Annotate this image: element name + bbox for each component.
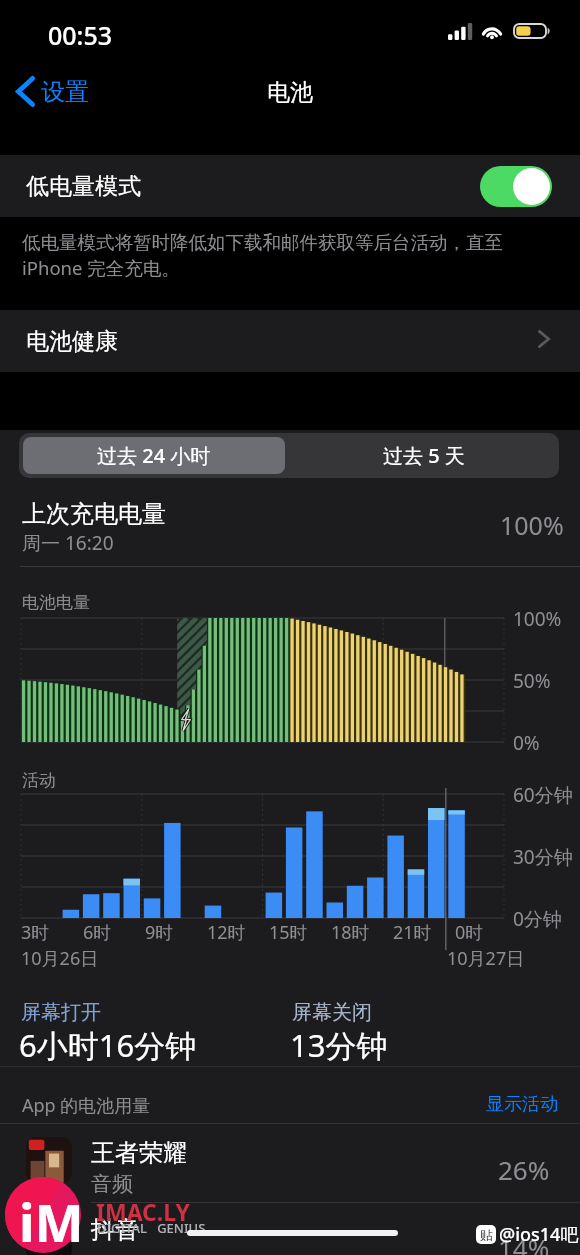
staticText: 00:53 [48,18,113,52]
staticText: 上次充电电量 [22,499,166,529]
staticText: 15时 [269,920,308,945]
staticText: 屏幕打开 [21,1000,101,1025]
button[interactable]: Low Power Mode toggle [480,166,552,207]
staticText: 6时 [83,920,112,945]
staticText: 50% [513,668,551,694]
staticText: 电池健康 [26,327,118,356]
button[interactable]: 过去 5 天 [289,433,559,478]
staticText: iM [19,1186,84,1255]
staticText: 电池电量 [22,592,90,613]
button[interactable]: 过去 24 小时 [23,437,285,474]
staticText: 音频 [91,1171,133,1197]
staticText: 10月27日 [447,946,525,971]
staticText: 贴 [480,1227,493,1243]
button[interactable]: 电池健康 [0,310,580,372]
staticText: 26% [498,1152,550,1187]
staticText: IMAC.LY [96,1196,190,1227]
staticText: 12时 [207,920,246,945]
staticText: 9时 [145,920,174,945]
staticText: 13分钟 [290,1024,388,1066]
staticText: 0分钟 [513,906,562,932]
button[interactable]: 设置 [16,76,89,107]
staticText: 6小时16分钟 [19,1024,197,1066]
staticText: 100% [513,606,562,632]
staticText: 30分钟 [513,844,573,870]
staticText: 过去 5 天 [383,442,465,469]
staticText: 100% [500,508,564,542]
staticText: 屏幕关闭 [292,1000,372,1025]
staticText: 抖音 [91,1215,139,1245]
button[interactable]: 显示活动 [486,1093,558,1116]
staticText: 周一 16:20 [22,530,114,556]
button[interactable]: 低电量模式 [0,155,580,217]
staticText: 设置 [41,77,89,107]
staticText: 低电量模式 [26,172,141,201]
staticText: 21时 [393,920,432,945]
staticText: 60分钟 [513,782,573,808]
staticText: 王者荣耀 [91,1138,187,1168]
staticText: 3时 [21,920,50,945]
staticText: 10月26日 [21,946,99,971]
staticText: 活动 [22,770,56,791]
staticText: 过去 24 小时 [97,442,211,469]
staticText: 0时 [455,920,484,945]
staticText: 14% [498,1230,550,1255]
staticText: DIGITAL GENIUS [97,1219,206,1237]
staticText: 低电量模式将暂时降低如下载和邮件获取等后台活动，直至 iPhone 完全充电。 [22,231,503,280]
staticText: App 的电池用量 [22,1093,151,1118]
staticText: @ios14吧 [499,1222,579,1247]
staticText: 0% [513,730,540,756]
staticText: 18时 [331,920,370,945]
staticText: 电池 [267,78,313,107]
